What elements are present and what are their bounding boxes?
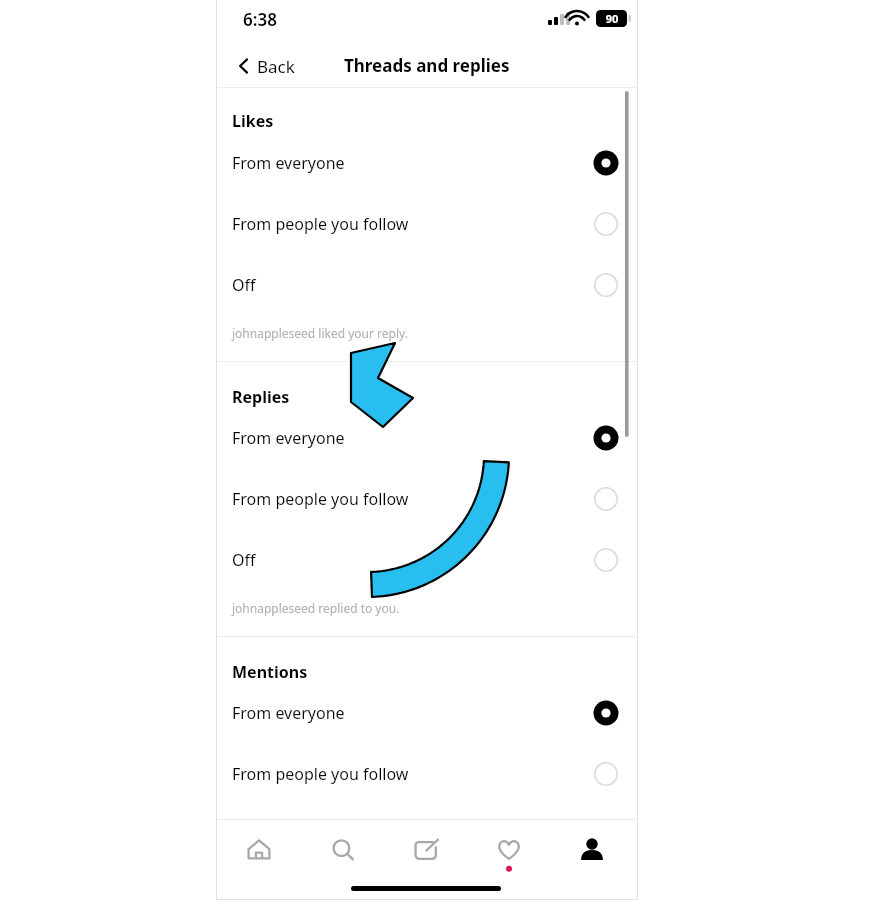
other: Not selected bbox=[593, 486, 619, 512]
other: Not selected bbox=[593, 272, 619, 298]
staticText: Off bbox=[232, 274, 256, 296]
staticText: From everyone bbox=[232, 427, 345, 449]
staticText: 90 bbox=[600, 11, 624, 26]
other: Selected bbox=[593, 700, 619, 726]
staticText: johnappleseed liked your reply. bbox=[232, 325, 408, 341]
other: Not selected bbox=[593, 547, 619, 573]
staticText: From people you follow bbox=[232, 763, 409, 785]
other: Selected bbox=[593, 150, 619, 176]
button[interactable]: From people you follow bbox=[217, 750, 637, 798]
button[interactable]: From everyone bbox=[217, 689, 637, 737]
button[interactable]: From people you follow bbox=[217, 200, 637, 248]
other: Not selected bbox=[593, 211, 619, 237]
staticText: 6:38 bbox=[243, 8, 277, 31]
button[interactable]: From people you follow bbox=[217, 475, 637, 523]
staticText: Threads and replies bbox=[344, 54, 510, 77]
staticText: From people you follow bbox=[232, 213, 409, 235]
staticText: Off bbox=[232, 549, 256, 571]
button[interactable]: Profile bbox=[570, 828, 614, 872]
staticText: From people you follow bbox=[232, 488, 409, 510]
staticText: Back bbox=[257, 55, 295, 78]
staticText: From everyone bbox=[232, 702, 345, 724]
button[interactable]: Off bbox=[217, 261, 637, 309]
staticText: Likes bbox=[232, 110, 274, 132]
button[interactable]: From everyone bbox=[217, 414, 637, 462]
button[interactable]: Activity bbox=[487, 828, 531, 872]
button[interactable]: Home bbox=[237, 828, 281, 872]
other: Not selected bbox=[593, 761, 619, 787]
staticText: Mentions bbox=[232, 661, 308, 683]
other: Selected bbox=[593, 425, 619, 451]
button[interactable]: From everyone bbox=[217, 139, 637, 187]
button[interactable]: Off bbox=[217, 536, 637, 584]
staticText: johnappleseed replied to you. bbox=[232, 600, 400, 616]
button[interactable]: Back bbox=[231, 50, 301, 82]
button[interactable]: New thread bbox=[404, 828, 448, 872]
staticText: From everyone bbox=[232, 152, 345, 174]
staticText: Replies bbox=[232, 386, 290, 408]
button[interactable]: Search bbox=[321, 828, 365, 872]
